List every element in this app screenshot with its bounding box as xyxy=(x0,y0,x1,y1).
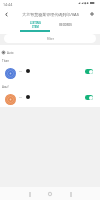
button[interactable]: Toggle Aauf xyxy=(85,95,93,100)
button[interactable]: Filter xyxy=(4,34,96,43)
staticText: 0% xyxy=(19,70,23,73)
button[interactable]: Titan xyxy=(0,45,100,70)
staticText: ITEM xyxy=(32,25,39,29)
staticText: Titan xyxy=(2,59,10,63)
staticText: RECORDS xyxy=(59,23,72,27)
button[interactable]: Aauf xyxy=(0,71,100,96)
staticText: Auto xyxy=(7,51,14,55)
staticText: 0% xyxy=(19,96,23,99)
button[interactable]: Home xyxy=(44,188,56,200)
button[interactable]: Back xyxy=(1,9,11,19)
staticText: LISTING xyxy=(30,21,41,25)
staticText: 14:44 xyxy=(3,2,13,7)
staticText: Filter xyxy=(47,37,54,41)
button[interactable]: Add xyxy=(87,9,97,19)
button[interactable]: RECORDS xyxy=(50,20,80,32)
button[interactable]: Back xyxy=(24,188,36,200)
button[interactable]: Toggle Titan xyxy=(85,69,93,74)
staticText: 大方智慧物業管理代碼列印/VAS xyxy=(22,12,79,17)
button[interactable]: Recent apps xyxy=(65,188,77,200)
staticText: Aauf xyxy=(2,85,9,89)
button[interactable]: LISTING xyxy=(20,20,50,32)
button[interactable]: Auto xyxy=(2,49,42,56)
